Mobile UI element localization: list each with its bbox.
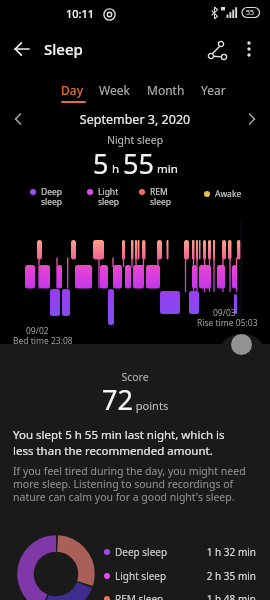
button[interactable]: Day [55,78,91,106]
staticText: 1 h 32 min [98,545,256,559]
staticText: 09/02 [26,325,49,337]
button[interactable] [203,37,228,61]
staticText: Deep sleep [41,186,63,208]
staticText: If you feel tired during the day, you mi… [13,464,246,504]
button[interactable] [231,334,252,355]
staticText: Sleep [44,39,83,59]
button[interactable] [6,108,30,130]
staticText: Light sleep [98,186,120,208]
staticText: September 3, 2020 [0,111,270,128]
button[interactable]: Month [143,78,193,106]
staticText: 1 h 48 min [98,592,256,600]
button[interactable]: REM sleep [98,590,260,600]
staticText: Year [201,82,226,98]
button[interactable]: Light sleep [98,567,260,587]
staticText: h [109,161,123,177]
staticText: REM sleep [115,592,164,600]
staticText: 55 [123,145,154,182]
staticText: Week [99,82,130,98]
staticText: REM sleep [150,186,172,208]
staticText: Awake [215,188,242,200]
staticText: Bed time 23:08 [13,335,73,347]
staticText: points [133,398,169,413]
staticText: Score [0,370,270,384]
staticText: 72 [102,381,133,418]
staticText: Month [147,82,185,98]
button[interactable] [10,38,34,60]
button[interactable] [240,37,260,61]
staticText: Light sleep [115,569,167,583]
staticText: Day [61,82,83,98]
staticText: Night sleep [0,133,270,147]
button[interactable] [240,108,264,130]
staticText: 2 h 35 min [98,569,256,583]
staticText: 10:11 [66,6,95,21]
button[interactable]: Deep sleep [98,543,260,563]
staticText: Deep sleep [115,545,168,559]
button[interactable]: Year [197,78,235,106]
staticText: min [154,161,178,177]
staticText: Rise time 05:03 [197,317,258,329]
staticText: 55 [246,8,255,18]
staticText: You slept 5 h 55 min last night, which i… [13,427,225,458]
button[interactable]: Week [95,78,139,106]
staticText: 09/03 [213,307,236,319]
staticText: 5 [93,145,109,182]
